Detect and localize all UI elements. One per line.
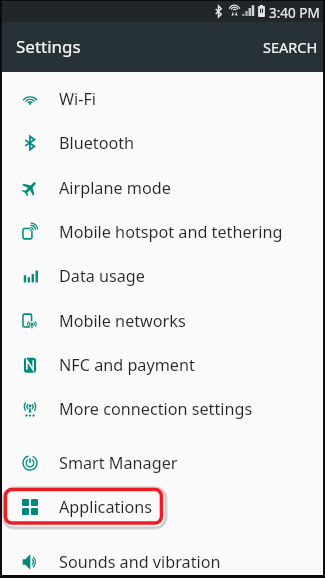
button[interactable]: Sounds and vibration [2,540,323,578]
staticText: NFC and payment [59,354,195,376]
button[interactable]: Bluetooth [2,121,323,165]
staticText: Settings [16,35,81,58]
button[interactable]: Applications [2,485,323,529]
staticText: Sounds and vibration [59,551,221,573]
staticText: 3:40 PM [269,4,320,22]
staticText: SEARCH [263,37,318,57]
staticText: Wi-Fi [59,88,97,110]
staticText: Applications [59,496,153,518]
button[interactable]: Data usage [2,254,323,298]
button[interactable]: More connection settings [2,387,323,431]
button[interactable]: SEARCH [252,28,325,66]
staticText: Mobile networks [59,310,186,332]
button[interactable]: Smart Manager [2,441,323,485]
staticText: Smart Manager [59,452,178,474]
staticText: Airplane mode [59,177,171,199]
button[interactable]: Mobile networks [2,299,323,343]
staticText: Data usage [59,265,145,287]
button[interactable]: NFC and payment [2,343,323,387]
staticText: Mobile hotspot and tethering [59,221,283,243]
staticText: More connection settings [59,398,253,420]
button[interactable]: Mobile hotspot and tethering [2,210,323,254]
staticText: Bluetooth [59,132,135,154]
button[interactable]: Wi-Fi [2,77,323,121]
button[interactable]: Airplane mode [2,166,323,210]
